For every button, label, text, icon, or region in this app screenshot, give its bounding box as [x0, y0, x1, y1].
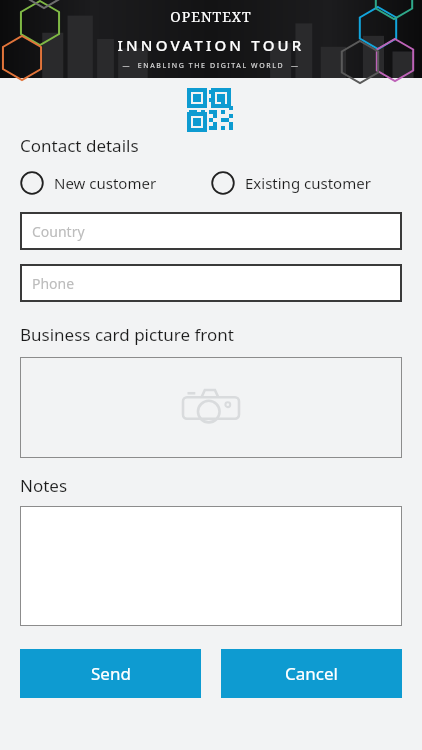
staticText: — ENABLING THE DIGITAL WORLD —	[0, 61, 422, 71]
staticText: Business card picture front	[20, 323, 234, 346]
other: Take picture	[183, 390, 239, 426]
button[interactable]	[20, 506, 402, 626]
staticText: Contact details	[20, 134, 139, 157]
button[interactable]: Phone	[20, 264, 402, 302]
staticText: Cancel	[285, 662, 338, 685]
staticText: Phone	[32, 274, 75, 293]
button[interactable]: Send	[20, 649, 201, 698]
staticText: Notes	[20, 474, 68, 497]
button[interactable]: Existing customer	[211, 171, 402, 195]
staticText: INNOVATION TOUR	[0, 35, 422, 55]
staticText: New customer	[54, 173, 157, 193]
staticText: Country	[32, 222, 85, 241]
button[interactable]: Cancel	[221, 649, 402, 698]
staticText: Send	[91, 662, 131, 685]
button[interactable]: New customer	[20, 171, 211, 195]
button[interactable]: Country	[20, 212, 402, 250]
button[interactable]: Take picture	[20, 357, 402, 458]
staticText: OPENTEXT	[0, 7, 422, 26]
staticText: Existing customer	[245, 173, 371, 193]
